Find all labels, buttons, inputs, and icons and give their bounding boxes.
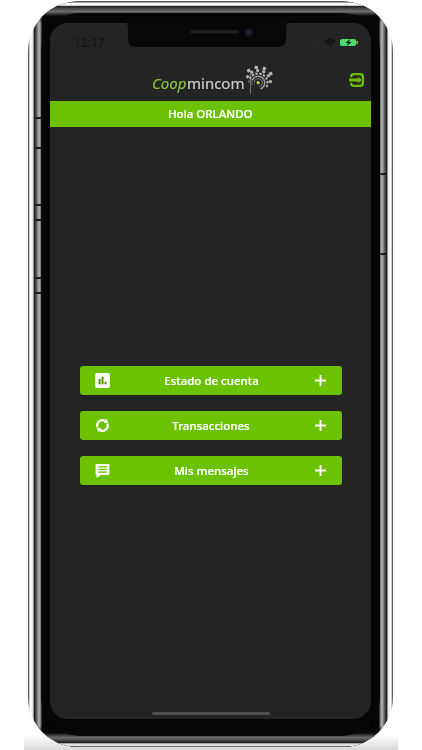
button[interactable]: Transacciones [80, 411, 342, 440]
staticText: mincom [187, 73, 245, 93]
staticText: Transacciones [172, 418, 250, 434]
staticText: Estado de cuenta [164, 373, 259, 389]
staticText: 12:17 [74, 34, 105, 50]
button[interactable]: Hola ORLANDO [50, 101, 371, 127]
staticText: Hola ORLANDO [168, 106, 253, 122]
staticText: Mis mensajes [174, 463, 249, 479]
button[interactable]: Mis mensajes [80, 456, 342, 485]
button[interactable]: Cerrar sesion [343, 66, 371, 94]
button[interactable]: Estado de cuenta [80, 366, 342, 395]
staticText: Coop [152, 73, 187, 93]
